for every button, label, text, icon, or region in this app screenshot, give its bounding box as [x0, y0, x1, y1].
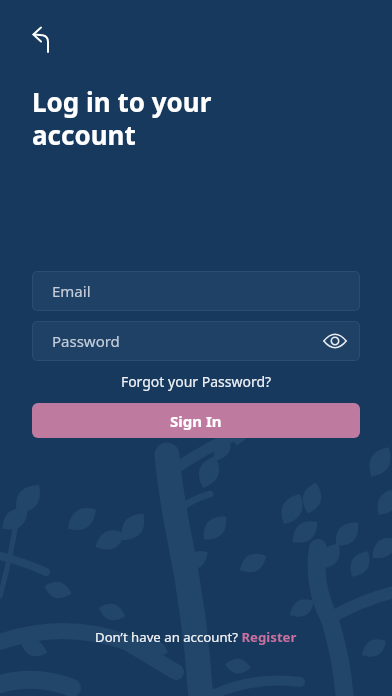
button[interactable]: Don’t have an account? Register — [95, 628, 297, 646]
button[interactable]: Email — [32, 271, 360, 311]
button[interactable]: Sign In — [32, 403, 360, 438]
staticText: Sign In — [170, 411, 222, 431]
staticText: Password — [52, 331, 120, 351]
button[interactable]: Forgot your Password? — [32, 372, 360, 391]
staticText: Email — [52, 281, 91, 301]
staticText: Don’t have an account? Register — [95, 628, 297, 646]
staticText: Log in to your account — [32, 84, 212, 153]
button[interactable]: Password — [32, 321, 360, 361]
button[interactable] — [32, 25, 60, 53]
